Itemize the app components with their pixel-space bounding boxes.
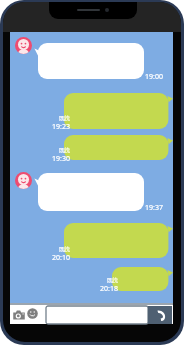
button[interactable]: [46, 306, 148, 324]
button[interactable]: [112, 267, 173, 291]
button[interactable]: Profile photo: [15, 37, 32, 54]
button[interactable]: [64, 135, 173, 160]
staticText: 既読: [107, 277, 118, 284]
button[interactable]: [64, 223, 173, 258]
staticText: 20:10: [52, 253, 70, 263]
staticText: 19:23: [52, 122, 70, 132]
button[interactable]: Emoji: [27, 308, 38, 319]
button[interactable]: [34, 43, 144, 79]
staticText: 19:37: [145, 203, 163, 213]
staticText: 既読: [59, 115, 70, 122]
staticText: 19:00: [145, 72, 163, 82]
staticText: 19:30: [52, 154, 70, 164]
button[interactable]: Profile photo: [15, 172, 32, 189]
button[interactable]: [64, 93, 173, 129]
button[interactable]: [34, 173, 144, 211]
staticText: 20:18: [100, 284, 118, 294]
staticText: 既読: [59, 246, 70, 253]
button[interactable]: Camera: [12, 308, 26, 322]
button[interactable]: Call: [148, 306, 172, 324]
staticText: 既読: [59, 147, 70, 154]
